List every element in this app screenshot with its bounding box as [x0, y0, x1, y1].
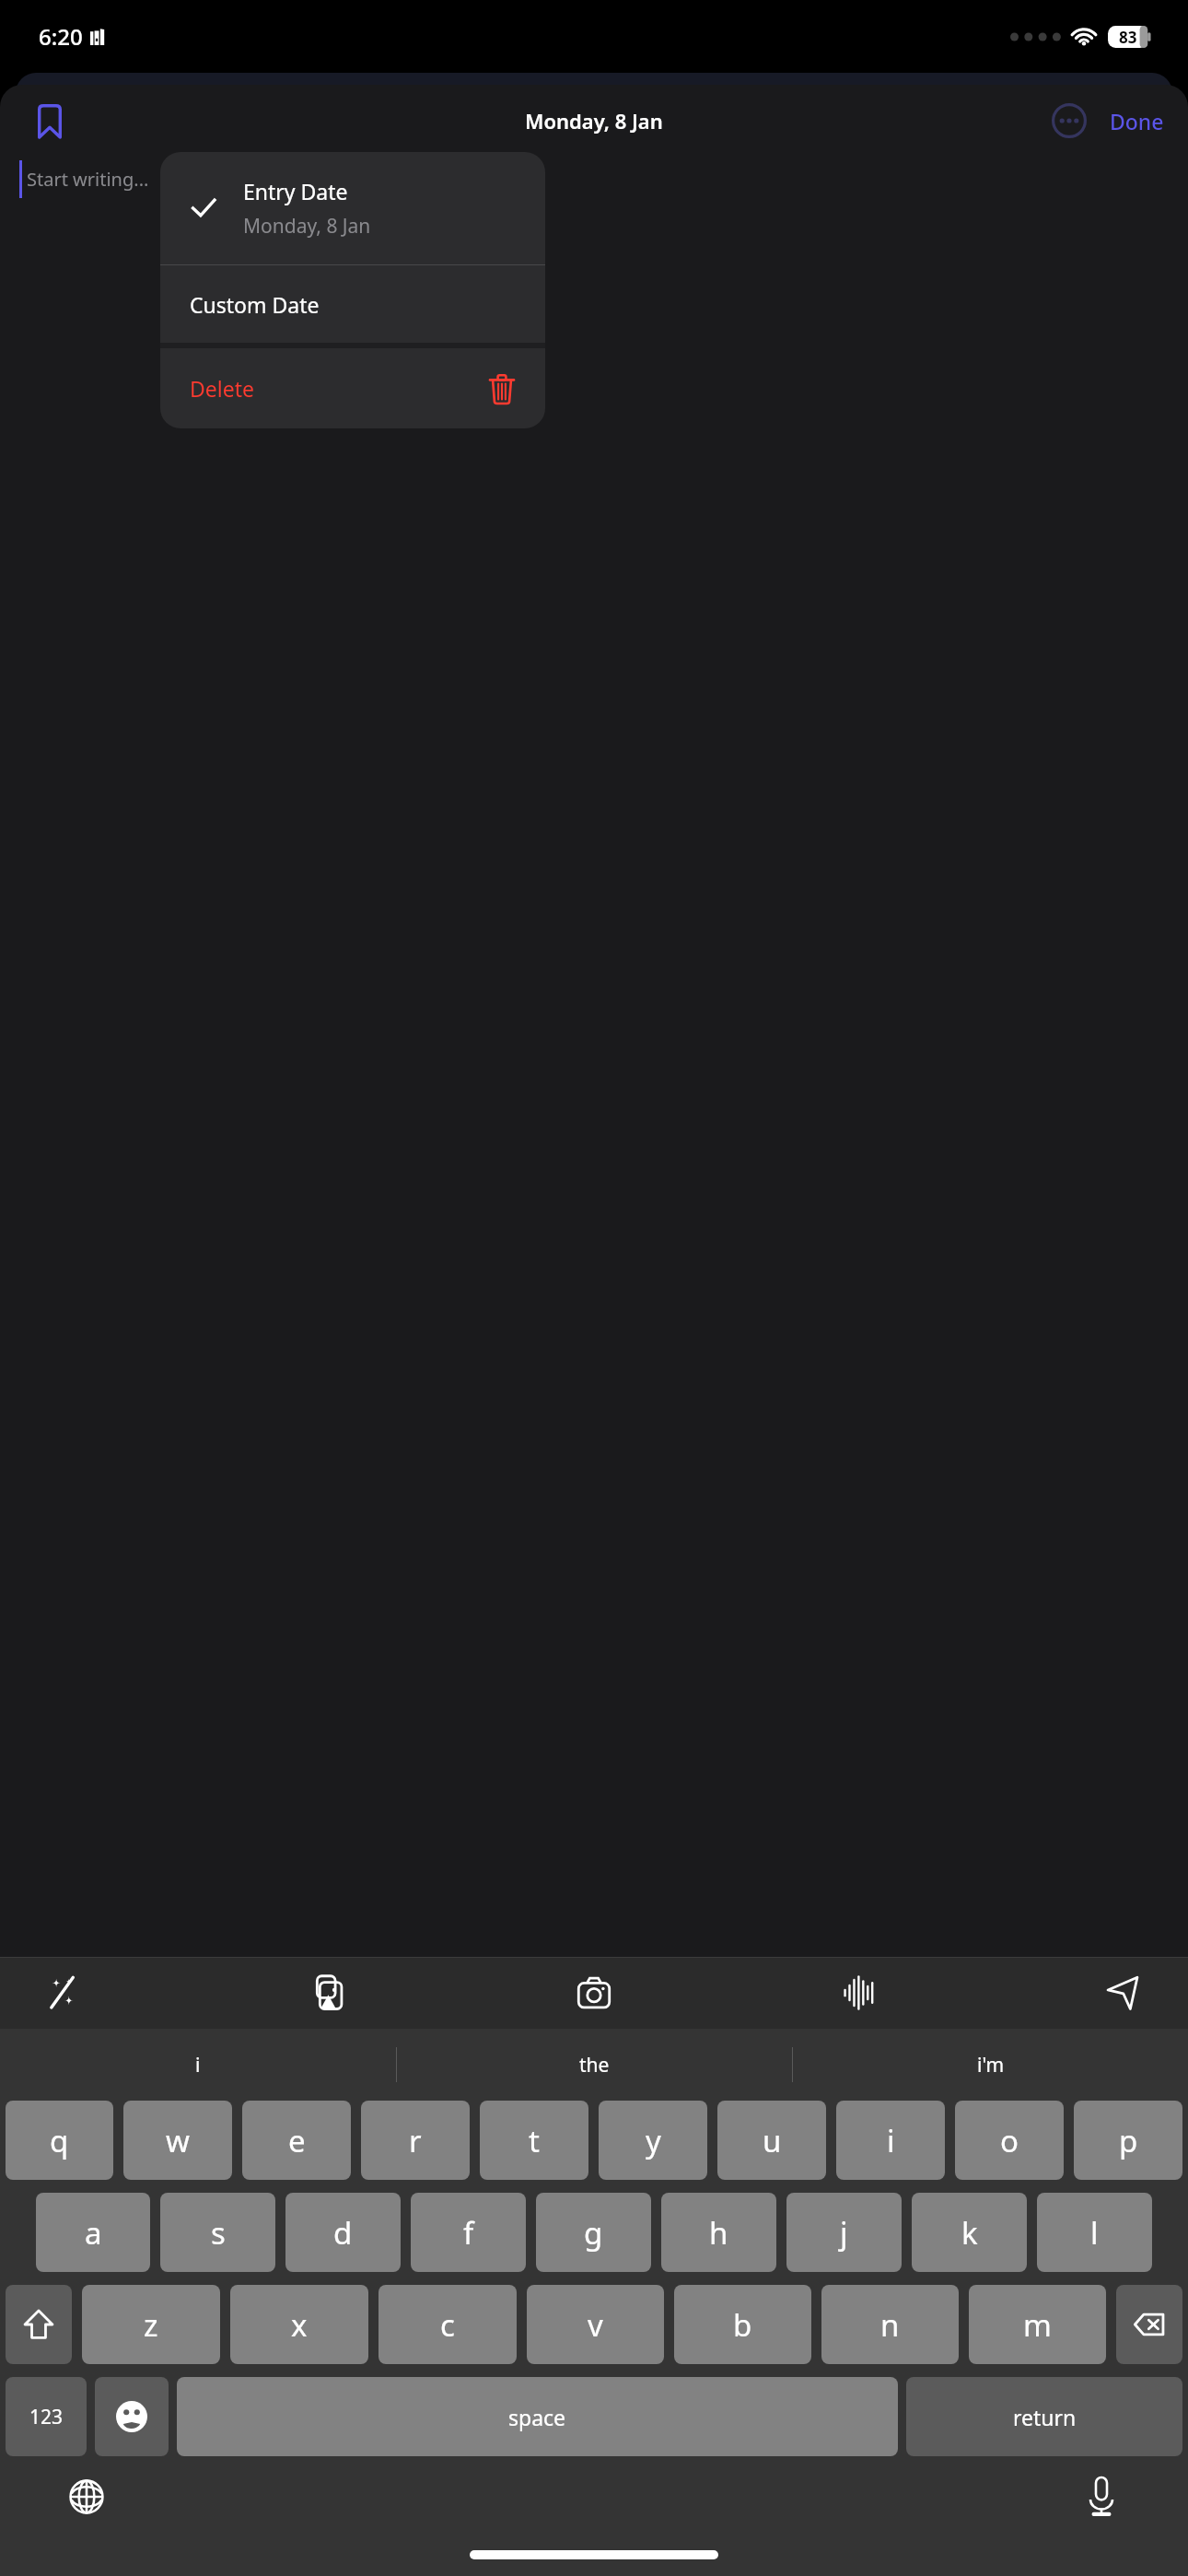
staticText: i: [887, 2120, 895, 2161]
button[interactable]: v: [527, 2285, 664, 2364]
staticText: t: [529, 2120, 540, 2161]
button[interactable]: p: [1074, 2101, 1182, 2180]
staticText: c: [440, 2304, 455, 2346]
button[interactable]: Custom Date: [160, 265, 545, 343]
button[interactable]: i'm: [793, 2029, 1188, 2101]
button[interactable]: h: [661, 2193, 776, 2272]
button[interactable]: g: [536, 2193, 651, 2272]
button[interactable]: Magic: [31, 1959, 99, 2027]
staticText: p: [1119, 2120, 1138, 2161]
staticText: 83: [1119, 27, 1137, 48]
button[interactable]: t: [480, 2101, 588, 2180]
staticText: space: [508, 2403, 566, 2431]
staticText: the: [579, 2052, 610, 2078]
staticText: z: [144, 2304, 158, 2346]
button[interactable]: d: [285, 2193, 401, 2272]
button[interactable]: k: [912, 2193, 1027, 2272]
staticText: u: [763, 2120, 782, 2161]
staticText: v: [588, 2304, 603, 2346]
staticText: 123: [29, 2404, 64, 2430]
button[interactable]: m: [969, 2285, 1106, 2364]
staticText: f: [463, 2212, 474, 2254]
button[interactable]: s: [160, 2193, 275, 2272]
staticText: Delete: [190, 374, 254, 403]
staticText: Monday, 8 Jan: [243, 213, 371, 240]
button[interactable]: a: [36, 2193, 150, 2272]
staticText: r: [409, 2120, 422, 2161]
button[interactable]: Dictate: [1070, 2465, 1133, 2528]
button[interactable]: u: [717, 2101, 826, 2180]
staticText: j: [840, 2212, 848, 2254]
staticText: o: [1000, 2120, 1019, 2161]
button[interactable]: Bookmark: [24, 95, 76, 146]
staticText: e: [288, 2120, 306, 2161]
button[interactable]: w: [123, 2101, 232, 2180]
button[interactable]: r: [361, 2101, 470, 2180]
staticText: d: [333, 2212, 353, 2254]
button[interactable]: Camera: [560, 1959, 628, 2027]
button[interactable]: e: [242, 2101, 351, 2180]
button[interactable]: l: [1037, 2193, 1152, 2272]
button[interactable]: Audio: [824, 1959, 892, 2027]
staticText: b: [733, 2304, 752, 2346]
staticText: m: [1023, 2304, 1052, 2346]
button[interactable]: Entry Date: [160, 152, 545, 264]
staticText: s: [211, 2212, 226, 2254]
staticText: Custom Date: [190, 290, 320, 319]
staticText: Done: [1110, 107, 1164, 135]
staticText: i: [195, 2052, 201, 2078]
button[interactable]: More options: [1045, 97, 1093, 145]
staticText: w: [166, 2120, 190, 2161]
button[interactable]: f: [411, 2193, 526, 2272]
button[interactable]: c: [379, 2285, 517, 2364]
button[interactable]: Photos: [296, 1959, 364, 2027]
staticText: Start writing...: [27, 167, 149, 192]
staticText: i'm: [977, 2052, 1005, 2078]
staticText: Entry Date: [243, 177, 348, 205]
button[interactable]: n: [821, 2285, 959, 2364]
staticText: h: [709, 2212, 728, 2254]
staticText: n: [880, 2304, 900, 2346]
button[interactable]: z: [82, 2285, 220, 2364]
staticText: g: [584, 2212, 603, 2254]
button[interactable]: Send: [1089, 1959, 1157, 2027]
button[interactable]: x: [230, 2285, 368, 2364]
staticText: q: [50, 2120, 69, 2161]
button[interactable]: Backspace: [1116, 2285, 1182, 2364]
button[interactable]: Change keyboard: [55, 2465, 118, 2528]
staticText: l: [1090, 2212, 1099, 2254]
button[interactable]: b: [674, 2285, 811, 2364]
button[interactable]: Delete: [160, 348, 545, 428]
button[interactable]: y: [599, 2101, 707, 2180]
staticText: y: [646, 2120, 661, 2161]
staticText: return: [1013, 2403, 1077, 2431]
button[interactable]: return: [906, 2377, 1182, 2456]
button[interactable]: Emoji: [95, 2377, 169, 2456]
staticText: a: [85, 2212, 102, 2254]
staticText: x: [291, 2304, 308, 2346]
button[interactable]: i: [836, 2101, 945, 2180]
button[interactable]: o: [955, 2101, 1064, 2180]
button[interactable]: 123: [6, 2377, 87, 2456]
staticText: Monday, 8 Jan: [525, 107, 663, 135]
button[interactable]: q: [6, 2101, 113, 2180]
button[interactable]: Done: [1106, 100, 1168, 143]
button[interactable]: Shift: [6, 2285, 72, 2364]
staticText: 6:20: [39, 21, 83, 52]
staticText: k: [961, 2212, 978, 2254]
button[interactable]: i: [0, 2029, 396, 2101]
button[interactable]: the: [397, 2029, 792, 2101]
button[interactable]: j: [786, 2193, 902, 2272]
button[interactable]: space: [177, 2377, 898, 2456]
